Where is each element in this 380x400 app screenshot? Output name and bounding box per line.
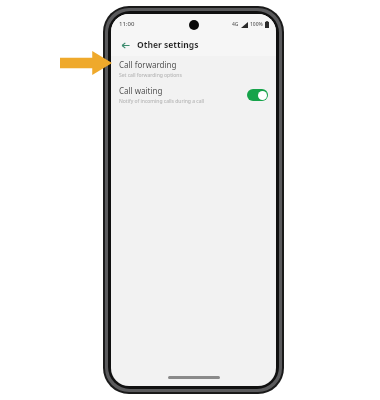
staticText: 11:00 <box>119 20 135 28</box>
staticText: Call waiting <box>119 85 163 96</box>
button[interactable]: Call waiting toggle, on <box>247 89 268 101</box>
button[interactable]: Call forwarding <box>111 56 276 82</box>
staticText: Call forwarding <box>119 59 177 70</box>
staticText: 100% <box>250 21 263 28</box>
button[interactable]: Call waiting <box>111 82 276 108</box>
staticText: Set call forwarding options <box>119 72 182 79</box>
staticText: 4G <box>232 21 239 28</box>
staticText: Other settings <box>137 39 199 51</box>
button[interactable]: Back <box>118 38 132 52</box>
staticText: Notify of incoming calls during a call <box>119 98 205 105</box>
